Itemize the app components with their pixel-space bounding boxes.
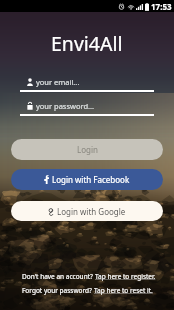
button[interactable]: Tap here to reset it.: [94, 286, 153, 295]
button[interactable]: Tap here to register.: [95, 272, 156, 281]
staticText: Login with Google: [57, 206, 126, 217]
button[interactable]: Login with Google: [11, 201, 163, 221]
staticText: your email...: [36, 77, 80, 87]
staticText: 17:53: [151, 1, 172, 12]
staticText: Envi4All: [51, 30, 123, 57]
staticText: Login: [77, 144, 98, 155]
staticText: Login with Facebook: [52, 174, 130, 185]
button[interactable]: Login: [11, 139, 163, 160]
staticText: Don't have an account?: [22, 272, 95, 281]
button[interactable]: Login with Facebook: [11, 169, 163, 190]
staticText: your password...: [36, 101, 95, 111]
other: Battery: [145, 3, 149, 11]
staticText: Forgot your password?: [22, 286, 94, 295]
other: Wi-Fi: [127, 3, 135, 10]
other: Alarm: [118, 3, 125, 10]
other: Signal: [136, 3, 143, 10]
